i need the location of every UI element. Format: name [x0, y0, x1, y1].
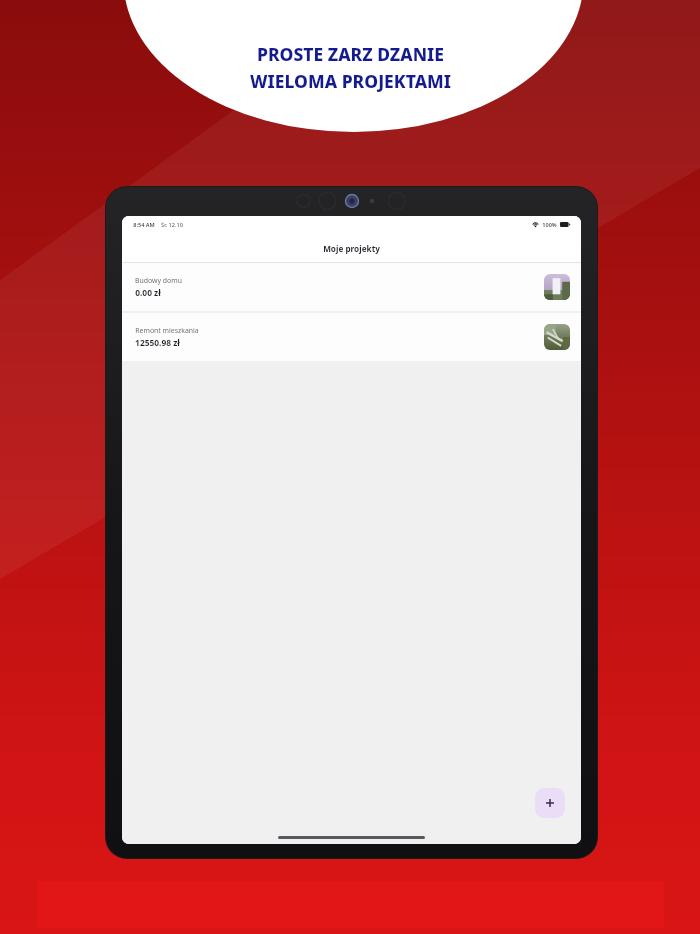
button[interactable]: Remont mieszkania	[122, 313, 581, 361]
staticText: Śr. 12.10	[161, 221, 183, 229]
staticText: PROSTE ZARZ DZANIE	[257, 42, 444, 66]
staticText: 100%	[542, 221, 557, 229]
staticText: 0.00 zł	[135, 287, 161, 298]
button[interactable]: Dodaj projekt	[535, 788, 565, 818]
staticText: Remont mieszkania	[135, 326, 199, 335]
staticText: WIELOMA PROJEKTAMI	[250, 69, 451, 93]
button[interactable]: Budowy domu	[122, 263, 581, 311]
staticText: 12550.98 zł	[135, 337, 180, 348]
staticText: Moje projekty	[323, 243, 380, 254]
staticText: 8:54 AM	[133, 221, 155, 229]
staticText: Budowy domu	[135, 276, 182, 285]
